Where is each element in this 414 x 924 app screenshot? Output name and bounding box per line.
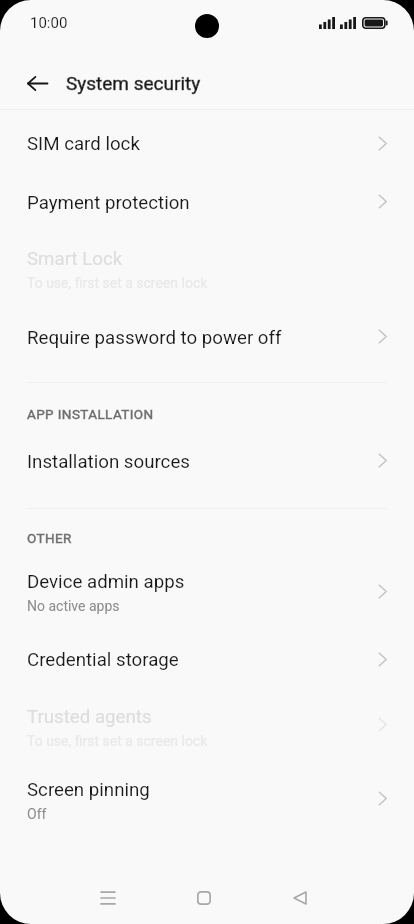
staticText: SIM card lock	[27, 133, 140, 155]
button[interactable]: Back	[280, 878, 320, 918]
staticText: Installation sources	[27, 451, 190, 473]
staticText: OTHER	[27, 530, 72, 546]
button[interactable]: Require password to power off	[0, 308, 414, 367]
button[interactable]: SIM card lock	[0, 114, 414, 174]
staticText: To use, first set a screen lock	[27, 733, 208, 749]
button[interactable]: Payment protection	[0, 174, 414, 231]
button[interactable]: Device admin apps	[0, 554, 414, 631]
staticText: APP INSTALLATION	[27, 406, 154, 422]
staticText: Off	[27, 806, 47, 822]
staticText: Credential storage	[27, 649, 179, 671]
button[interactable]: Credential storage	[0, 631, 414, 689]
staticText: Require password to power off	[27, 327, 282, 349]
staticText: To use, first set a screen lock	[27, 275, 208, 291]
button[interactable]: Recent apps	[88, 878, 128, 918]
staticText: Screen pinning	[27, 779, 150, 801]
staticText: Payment protection	[27, 192, 190, 214]
staticText: OTHER	[27, 530, 72, 546]
staticText: Trusted agents	[27, 706, 152, 728]
button[interactable]: Smart Lock	[0, 231, 414, 308]
staticText: No active apps	[27, 598, 120, 614]
staticText: 10:00	[30, 14, 68, 32]
button[interactable]: Home	[184, 878, 224, 918]
staticText: System security	[66, 72, 201, 94]
button[interactable]: Trusted agents	[0, 689, 414, 762]
staticText: APP INSTALLATION	[27, 406, 154, 422]
button[interactable]: Screen pinning	[0, 762, 414, 837]
staticText: Smart Lock	[27, 248, 123, 270]
button[interactable]: Navigate up	[14, 60, 60, 106]
staticText: System security	[66, 72, 201, 94]
button[interactable]: Installation sources	[0, 432, 414, 491]
staticText: Device admin apps	[27, 571, 185, 593]
